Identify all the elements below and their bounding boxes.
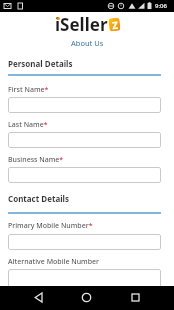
staticText: First Name* bbox=[8, 85, 49, 95]
staticText: Z bbox=[111, 18, 118, 31]
button[interactable] bbox=[58, 286, 116, 310]
button[interactable] bbox=[0, 286, 58, 310]
staticText: Primary Mobile Number* bbox=[8, 221, 93, 231]
staticText: Business Name* bbox=[8, 155, 64, 165]
staticText: 9:06 bbox=[155, 2, 167, 10]
button[interactable] bbox=[8, 132, 161, 148]
staticText: Personal Details bbox=[8, 58, 73, 69]
staticText: Last Name* bbox=[8, 120, 48, 130]
staticText: Contact Details bbox=[8, 193, 69, 204]
button[interactable] bbox=[8, 269, 161, 288]
button[interactable] bbox=[8, 234, 161, 250]
staticText: About Us bbox=[71, 38, 104, 48]
button[interactable] bbox=[8, 167, 161, 183]
button[interactable]: About Us bbox=[71, 38, 104, 48]
staticText: iSeller bbox=[55, 13, 108, 36]
staticText: Alternative Mobile Number bbox=[8, 257, 100, 267]
button[interactable] bbox=[116, 286, 174, 310]
button[interactable] bbox=[8, 97, 161, 113]
